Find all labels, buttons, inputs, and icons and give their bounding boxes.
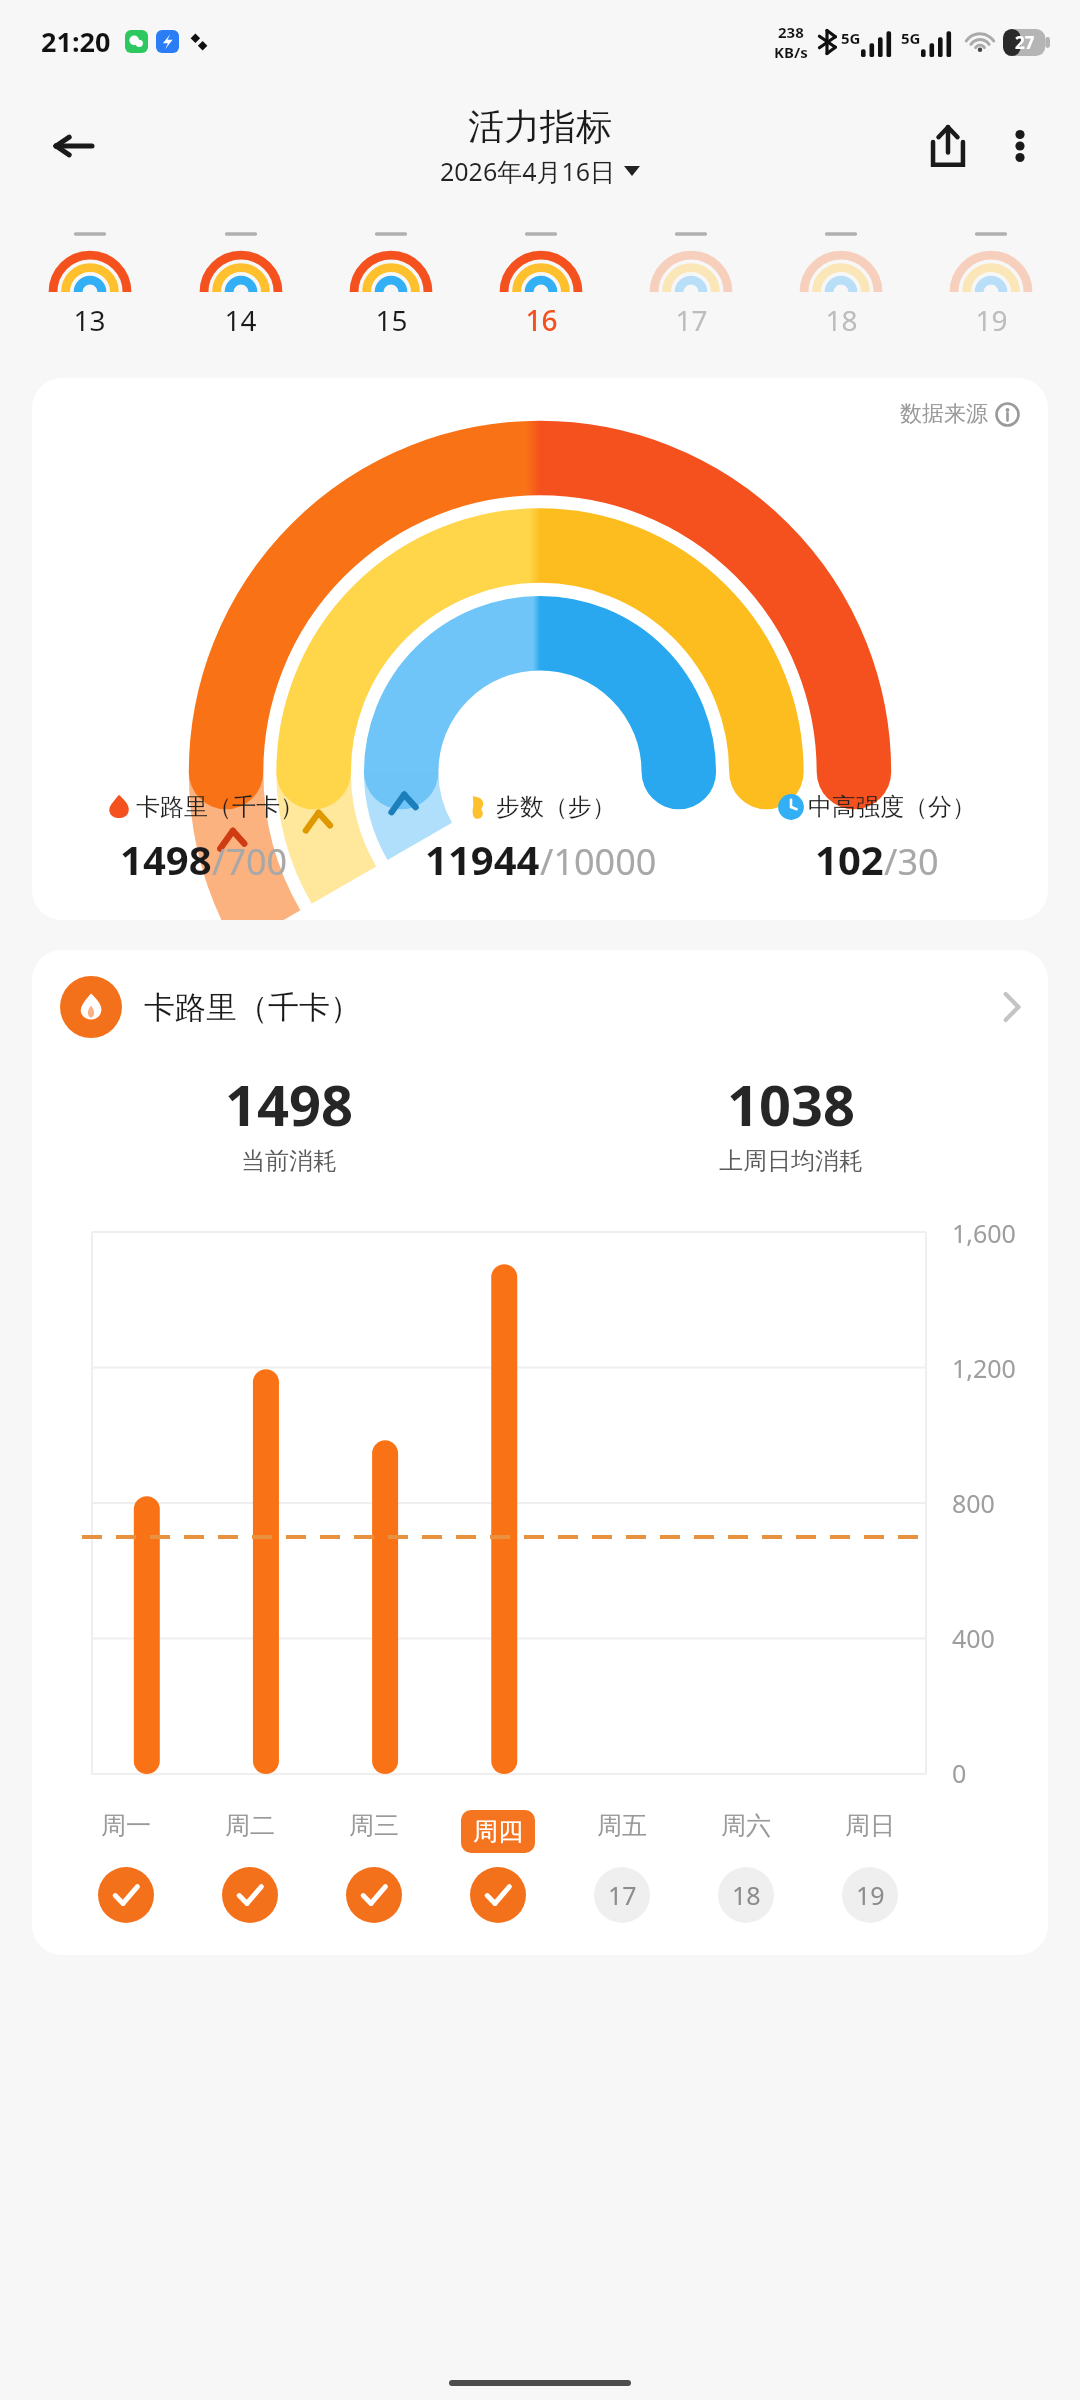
staticText: /30	[884, 837, 939, 886]
staticText: 卡路里（千卡）	[144, 988, 361, 1027]
staticText: 400	[952, 1621, 995, 1655]
staticText: 13	[73, 301, 106, 339]
staticText: 238	[778, 22, 804, 42]
button[interactable]: 周五	[560, 1810, 684, 1841]
staticText: 周一	[101, 1810, 151, 1841]
staticText: 周四	[473, 1816, 523, 1847]
staticText: 2026年4月16日	[440, 154, 616, 188]
button[interactable]: 卡路里（千卡）	[32, 950, 1048, 1044]
staticText: 17	[608, 1878, 637, 1912]
button[interactable]: Share	[912, 110, 984, 182]
button[interactable]: 15	[316, 208, 466, 358]
staticText: 27	[1015, 31, 1035, 54]
staticText: 102	[815, 832, 884, 886]
staticText: 16	[525, 301, 558, 339]
button[interactable]: 周六	[684, 1810, 808, 1841]
staticText: 上周日均消耗	[719, 1146, 863, 1176]
staticText: 活力指标	[468, 104, 612, 149]
staticText: 周六	[721, 1810, 771, 1841]
staticText: 当前消耗	[241, 1146, 337, 1176]
button[interactable]: 2026年4月16日	[440, 154, 640, 188]
button[interactable]: 13	[14, 208, 165, 358]
button[interactable]: 19	[916, 208, 1066, 358]
staticText: 18	[825, 301, 858, 339]
staticText: 17	[675, 301, 708, 339]
staticText: 数据来源	[900, 400, 988, 428]
button[interactable]: 18	[766, 208, 916, 358]
button[interactable]: 周四	[436, 1810, 560, 1853]
staticText: 中高强度（分）	[808, 792, 976, 822]
staticText: 5G	[901, 28, 921, 48]
button[interactable]: 数据来源	[900, 400, 1020, 428]
staticText: 800	[952, 1486, 995, 1520]
button[interactable]: 周三	[312, 1810, 436, 1841]
button[interactable]: 周二	[188, 1810, 312, 1841]
staticText: 18	[732, 1878, 761, 1912]
button[interactable]: 周一	[64, 1810, 188, 1841]
button[interactable]: 17	[616, 208, 766, 358]
staticText: 周三	[349, 1810, 399, 1841]
button[interactable]	[436, 1867, 560, 1923]
staticText: /700	[212, 837, 288, 886]
staticText: 0	[952, 1756, 967, 1790]
button[interactable]: 19	[808, 1867, 932, 1923]
staticText: 11944	[425, 832, 540, 886]
button[interactable]	[188, 1867, 312, 1923]
staticText: 1038	[727, 1066, 856, 1142]
staticText: 周五	[597, 1810, 647, 1841]
staticText: 19	[856, 1878, 885, 1912]
button[interactable]	[312, 1867, 436, 1923]
staticText: 卡路里（千卡）	[136, 792, 304, 822]
button[interactable]: 18	[684, 1867, 808, 1923]
button[interactable]: 17	[560, 1867, 684, 1923]
staticText: KB/s	[774, 42, 808, 62]
button[interactable]	[64, 1867, 188, 1923]
button[interactable]: More options	[984, 110, 1056, 182]
staticText: 21:20	[41, 23, 111, 60]
staticText: 19	[975, 301, 1008, 339]
staticText: 周二	[225, 1810, 275, 1841]
button[interactable]: 卡路里（千卡）	[42, 792, 366, 886]
button[interactable]: 步数（步）	[366, 792, 715, 886]
button[interactable]: 中高强度（分）	[715, 792, 1038, 886]
staticText: 5G	[841, 28, 861, 48]
staticText: 14	[224, 301, 257, 339]
staticText: 1498	[225, 1066, 354, 1142]
button[interactable]: 周日	[808, 1810, 932, 1841]
staticText: 1,200	[952, 1351, 1016, 1385]
staticText: 步数（步）	[496, 792, 616, 822]
staticText: 1,600	[952, 1216, 1016, 1250]
staticText: 1498	[120, 832, 212, 886]
button[interactable]: 14	[165, 208, 316, 358]
staticText: 周日	[845, 1810, 895, 1841]
staticText: /10000	[540, 837, 657, 886]
staticText: 15	[375, 301, 408, 339]
button[interactable]: Back	[38, 110, 110, 182]
button[interactable]: 16	[466, 208, 616, 358]
